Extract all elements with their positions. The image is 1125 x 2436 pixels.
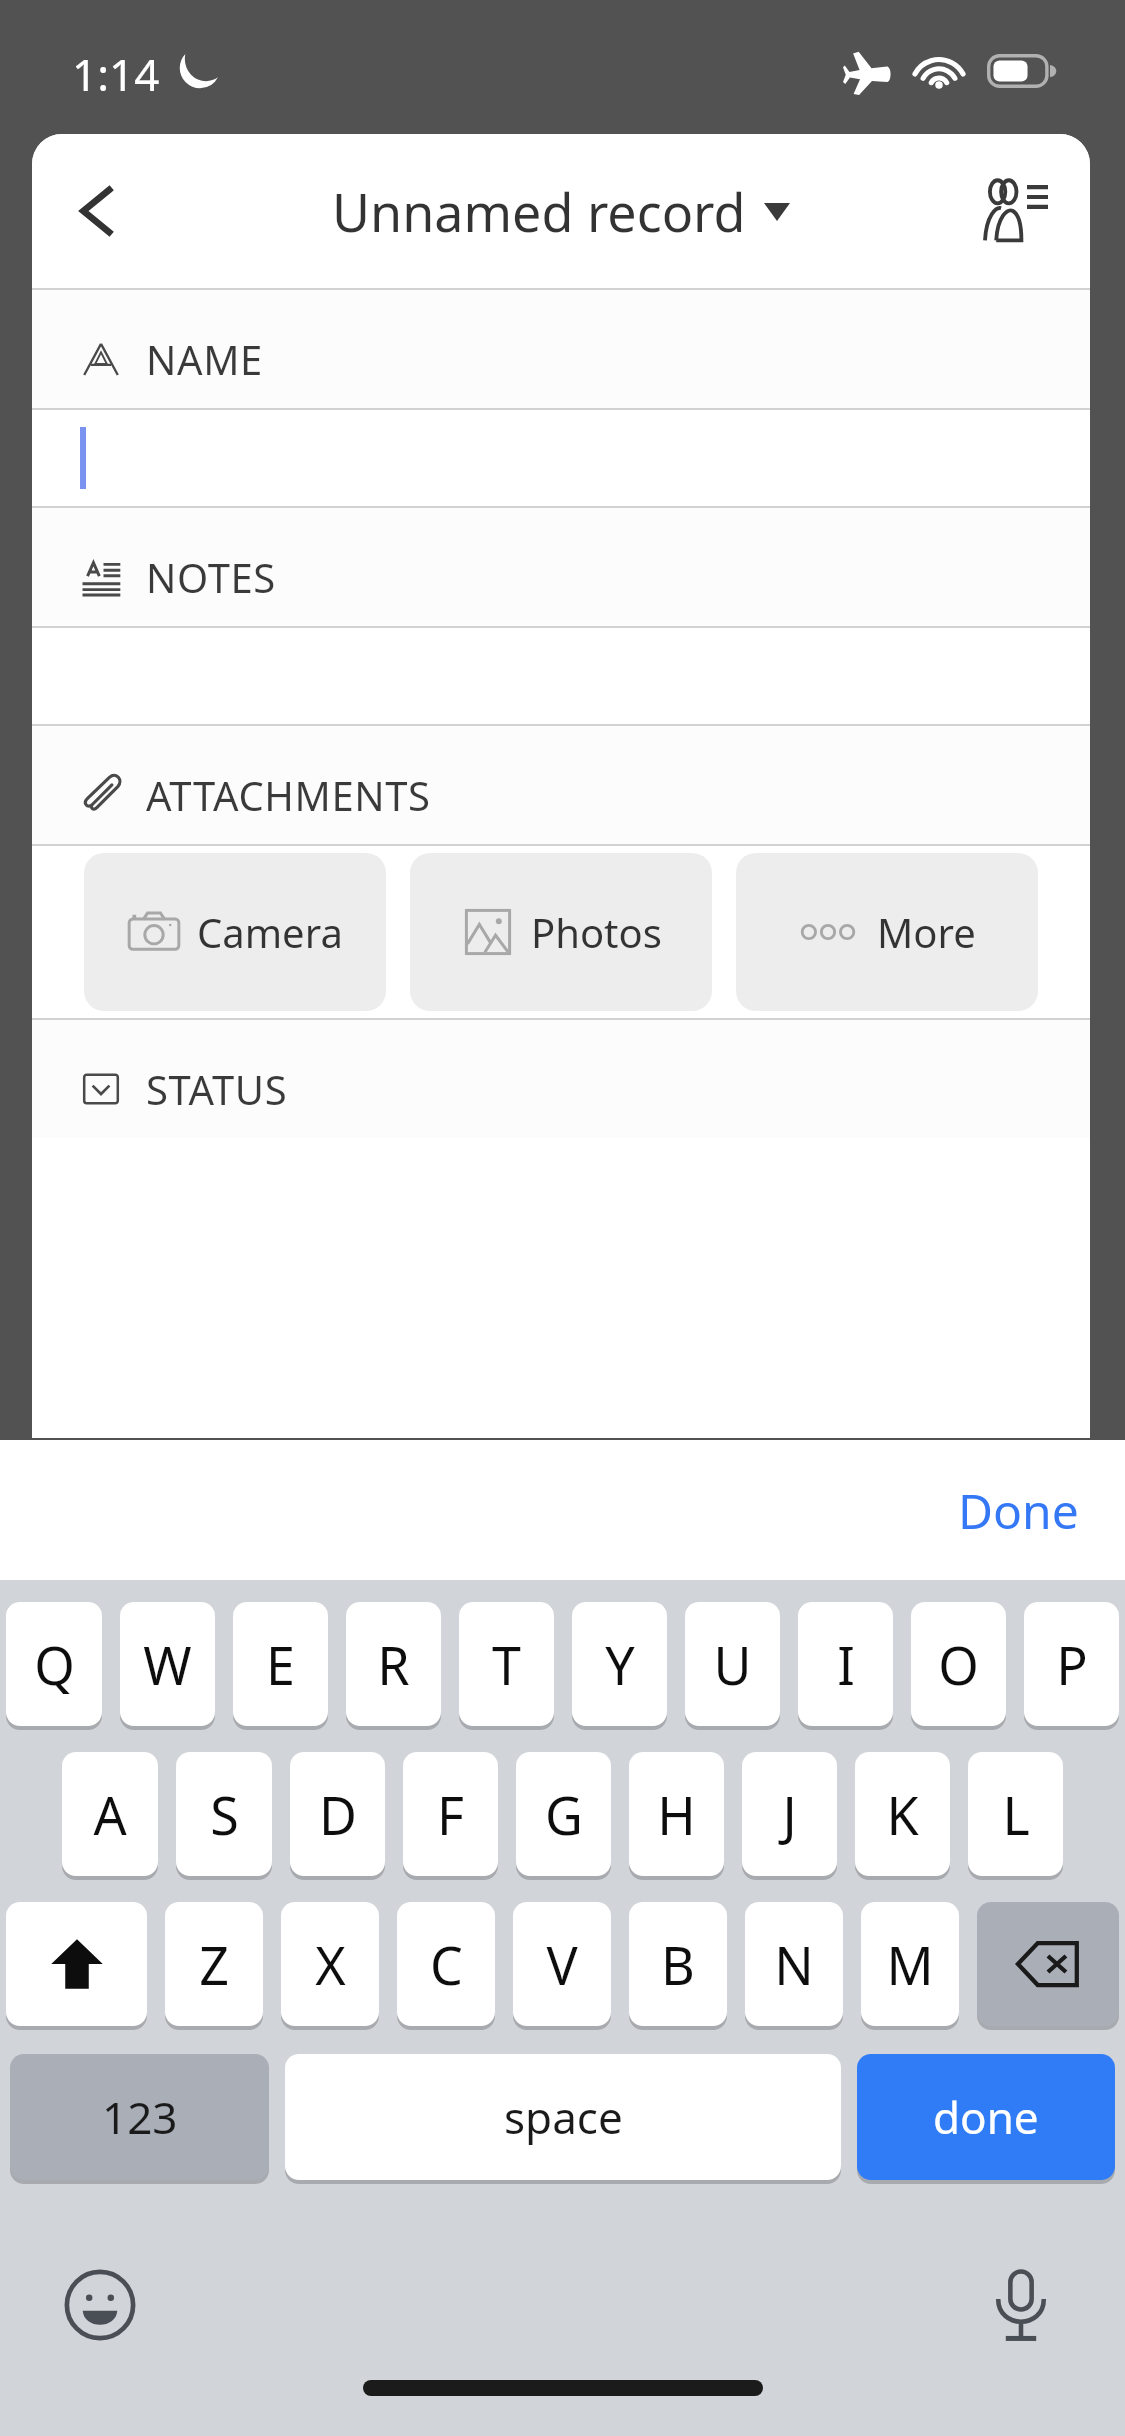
staticText: Q <box>34 1629 75 1700</box>
button[interactable]: Dictation <box>973 2257 1069 2353</box>
button[interactable]: I <box>798 1602 893 1726</box>
staticText: Done <box>958 1478 1079 1543</box>
button[interactable]: N <box>745 1902 843 2026</box>
staticText: M <box>886 1929 934 2000</box>
staticText: P <box>1056 1629 1088 1700</box>
button[interactable]: O <box>911 1602 1006 1726</box>
button[interactable]: T <box>459 1602 554 1726</box>
staticText: L <box>1002 1779 1030 1850</box>
button[interactable]: X <box>281 1902 379 2026</box>
button[interactable]: Done <box>928 1460 1109 1561</box>
button[interactable] <box>32 410 1090 506</box>
staticText: A <box>93 1779 127 1850</box>
staticText: NAME <box>146 332 263 386</box>
button[interactable]: Back <box>44 156 154 266</box>
staticText: K <box>886 1779 919 1850</box>
button[interactable]: More <box>736 853 1038 1011</box>
button[interactable]: space <box>285 2054 841 2180</box>
button[interactable]: 123 <box>10 2054 269 2180</box>
staticText: N <box>774 1929 814 2000</box>
button[interactable]: Photos <box>410 853 712 1011</box>
button[interactable]: F <box>403 1752 498 1876</box>
staticText: done <box>933 2087 1039 2147</box>
button[interactable]: S <box>176 1752 272 1876</box>
staticText: More <box>877 905 976 959</box>
staticText: O <box>938 1629 979 1700</box>
staticText: 123 <box>102 2087 178 2147</box>
button[interactable]: L <box>968 1752 1063 1876</box>
staticText: Camera <box>197 905 343 959</box>
button[interactable]: ATTACHMENTS <box>32 726 1090 844</box>
staticText: Y <box>605 1629 635 1700</box>
button[interactable]: B <box>629 1902 727 2026</box>
button[interactable]: E <box>233 1602 328 1726</box>
staticText: space <box>504 2087 623 2147</box>
staticText: Photos <box>531 905 662 959</box>
button[interactable]: P <box>1024 1602 1119 1726</box>
staticText: C <box>430 1929 463 2000</box>
staticText: E <box>266 1629 295 1700</box>
button[interactable]: Shift <box>6 1902 147 2026</box>
staticText: ATTACHMENTS <box>146 768 431 822</box>
button[interactable]: Emoji <box>52 2257 148 2353</box>
staticText: Unnamed record <box>332 176 746 247</box>
staticText: V <box>546 1929 578 2000</box>
button[interactable]: Z <box>165 1902 263 2026</box>
staticText: X <box>315 1929 346 2000</box>
button[interactable]: Camera <box>84 853 386 1011</box>
staticText: U <box>713 1629 752 1700</box>
staticText: G <box>545 1779 583 1850</box>
button[interactable]: W <box>120 1602 215 1726</box>
button[interactable]: H <box>629 1752 724 1876</box>
button[interactable]: done <box>857 2054 1115 2180</box>
button[interactable]: C <box>397 1902 495 2026</box>
staticText: S <box>210 1779 239 1850</box>
staticText: Z <box>199 1929 229 2000</box>
button[interactable]: Q <box>6 1602 102 1726</box>
staticText: T <box>492 1629 521 1700</box>
button[interactable]: A <box>62 1752 158 1876</box>
button[interactable]: Backspace <box>977 1902 1119 2026</box>
staticText: 1:14 <box>72 44 160 104</box>
staticText: R <box>377 1629 410 1700</box>
button[interactable]: STATUS <box>32 1020 1090 1138</box>
button[interactable]: K <box>855 1752 950 1876</box>
staticText: D <box>319 1779 357 1850</box>
button[interactable]: NOTES <box>32 508 1090 626</box>
button[interactable]: Contacts <box>958 156 1068 266</box>
button[interactable]: R <box>346 1602 441 1726</box>
staticText: B <box>661 1929 695 2000</box>
staticText: STATUS <box>146 1062 288 1116</box>
button[interactable]: NAME <box>32 290 1090 408</box>
staticText: J <box>782 1779 797 1850</box>
staticText: NOTES <box>146 550 276 604</box>
button[interactable]: J <box>742 1752 837 1876</box>
button[interactable]: G <box>516 1752 611 1876</box>
button[interactable]: Unnamed record <box>332 176 790 247</box>
staticText: I <box>837 1629 855 1700</box>
button[interactable]: D <box>290 1752 385 1876</box>
button[interactable]: Y <box>572 1602 667 1726</box>
staticText: W <box>143 1629 192 1700</box>
staticText: F <box>437 1779 464 1850</box>
button[interactable]: V <box>513 1902 611 2026</box>
button[interactable]: M <box>861 1902 959 2026</box>
staticText: H <box>657 1779 696 1850</box>
button[interactable]: U <box>685 1602 780 1726</box>
